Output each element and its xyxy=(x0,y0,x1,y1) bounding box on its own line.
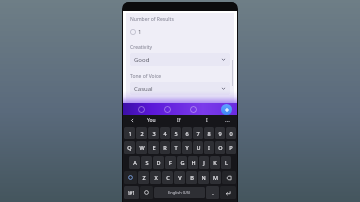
staticText: P xyxy=(229,144,233,151)
button[interactable]: Save xyxy=(180,103,206,115)
button[interactable]: Y xyxy=(182,141,192,154)
button[interactable]: Q xyxy=(124,141,135,154)
button[interactable]: S xyxy=(141,156,152,169)
staticText: N xyxy=(201,174,206,181)
button[interactable]: Backspace xyxy=(222,171,236,184)
button[interactable]: Casual xyxy=(134,82,226,95)
button[interactable]: 4 xyxy=(160,127,170,139)
staticText: B xyxy=(190,174,194,181)
button[interactable]: X xyxy=(150,171,161,184)
staticText: You xyxy=(147,117,156,124)
button[interactable]: English (US) xyxy=(154,187,205,198)
button[interactable]: D xyxy=(153,156,164,169)
button[interactable]: 3 xyxy=(148,127,159,139)
staticText: 8 xyxy=(207,130,211,137)
staticText: I xyxy=(208,144,210,151)
staticText: If xyxy=(177,117,181,124)
button[interactable]: Shift xyxy=(124,171,137,184)
button[interactable]: F xyxy=(165,156,176,169)
staticText: 4 xyxy=(163,130,167,137)
staticText: Number of Results xyxy=(130,16,174,23)
button[interactable]: V xyxy=(174,171,185,184)
button[interactable]: Generate xyxy=(221,104,232,115)
staticText: R xyxy=(163,144,167,151)
button[interactable]: R xyxy=(160,141,170,154)
staticText: . xyxy=(212,189,214,196)
staticText: Creativity xyxy=(130,44,153,51)
button[interactable]: Copy xyxy=(154,103,180,115)
button[interactable]: 6 xyxy=(182,127,192,139)
button[interactable]: !#1 xyxy=(124,186,139,199)
staticText: Z xyxy=(142,174,146,181)
button[interactable]: K xyxy=(210,156,220,169)
staticText: S xyxy=(145,159,149,166)
button[interactable]: 5 xyxy=(171,127,181,139)
staticText: X xyxy=(154,174,158,181)
staticText: O xyxy=(218,144,223,151)
button[interactable]: 2 xyxy=(136,127,147,139)
staticText: 2 xyxy=(140,130,144,137)
button[interactable]: W xyxy=(136,141,147,154)
staticText: M xyxy=(213,174,218,181)
staticText: English (US) xyxy=(168,190,191,195)
staticText: F xyxy=(169,159,172,166)
button[interactable]: I xyxy=(204,141,214,154)
button[interactable]: Previous xyxy=(127,115,137,126)
staticText: Y xyxy=(185,144,189,151)
staticText: H xyxy=(191,159,196,166)
button[interactable]: Emoji xyxy=(140,186,153,199)
button[interactable]: C xyxy=(162,171,173,184)
button[interactable]: 1 xyxy=(130,26,230,37)
staticText: 0 xyxy=(229,130,233,137)
staticText: 6 xyxy=(185,130,189,137)
button[interactable]: 8 xyxy=(204,127,214,139)
staticText: 1 xyxy=(128,130,132,137)
staticText: I xyxy=(206,117,208,124)
button[interactable]: O xyxy=(215,141,225,154)
button[interactable]: You xyxy=(137,115,165,126)
button[interactable]: P xyxy=(226,141,236,154)
button[interactable]: 0 xyxy=(226,127,236,139)
button[interactable]: B xyxy=(186,171,197,184)
staticText: Good xyxy=(134,56,150,64)
button[interactable]: U xyxy=(193,141,203,154)
button[interactable]: Undo xyxy=(128,103,154,115)
staticText: T xyxy=(174,144,178,151)
staticText: V xyxy=(178,174,182,181)
staticText: 9 xyxy=(218,130,222,137)
button[interactable]: A xyxy=(129,156,140,169)
button[interactable]: L xyxy=(221,156,231,169)
staticText: Q xyxy=(127,144,132,151)
staticText: Tone of Voice xyxy=(130,73,162,80)
staticText: G xyxy=(180,159,185,166)
staticText: K xyxy=(213,159,217,166)
staticText: 5 xyxy=(174,130,178,137)
button[interactable]: 9 xyxy=(215,127,225,139)
button[interactable]: M xyxy=(210,171,221,184)
button[interactable]: I xyxy=(193,115,221,126)
staticText: 7 xyxy=(196,130,200,137)
button[interactable]: Enter xyxy=(220,186,236,199)
button[interactable]: H xyxy=(188,156,198,169)
button[interactable]: Good xyxy=(134,53,226,66)
button[interactable]: G xyxy=(177,156,187,169)
button[interactable]: T xyxy=(171,141,181,154)
staticText: W xyxy=(139,144,145,151)
button[interactable]: More options xyxy=(221,115,233,126)
button[interactable]: N xyxy=(198,171,209,184)
staticText: ··· xyxy=(225,117,230,125)
staticText: U xyxy=(196,144,201,151)
staticText: Casual xyxy=(134,85,153,93)
staticText: 1 xyxy=(138,28,142,36)
button[interactable]: 1 xyxy=(124,127,135,139)
staticText: C xyxy=(166,174,170,181)
button[interactable]: Z xyxy=(138,171,149,184)
button[interactable]: J xyxy=(199,156,209,169)
button[interactable]: If xyxy=(165,115,193,126)
button[interactable]: . xyxy=(206,186,219,199)
button[interactable]: 7 xyxy=(193,127,203,139)
button[interactable]: E xyxy=(148,141,159,154)
staticText: A xyxy=(133,159,137,166)
staticText: L xyxy=(225,159,228,166)
staticText: E xyxy=(152,144,156,151)
